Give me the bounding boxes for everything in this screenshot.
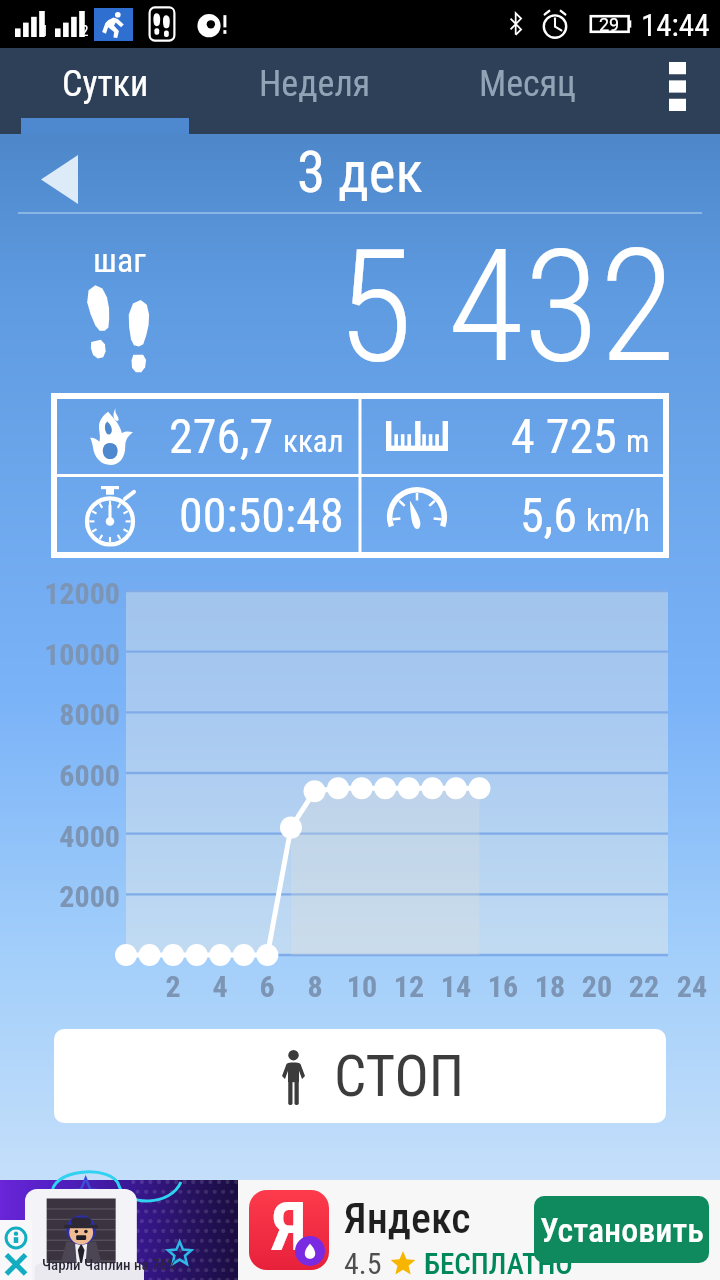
staticText: СТОП	[334, 1043, 465, 1110]
staticText: 24	[662, 969, 720, 1004]
staticText: БЕСПЛАТНО	[424, 1247, 573, 1280]
staticText: 8000	[0, 697, 120, 732]
staticText: Сутки	[62, 63, 149, 105]
button[interactable]: Неделя	[210, 48, 420, 134]
staticText: 10000	[0, 637, 120, 672]
staticText: 18	[520, 969, 580, 1004]
staticText: 2000	[0, 879, 120, 914]
button[interactable]: Ad info and close	[0, 1220, 32, 1280]
button[interactable]: Сутки	[0, 48, 210, 134]
staticText: 3 дек	[297, 139, 423, 206]
staticText: 5 432	[337, 215, 676, 385]
staticText: m	[626, 423, 650, 459]
staticText: 00:50:48	[179, 487, 344, 543]
button[interactable]: Месяц	[420, 48, 634, 134]
staticText: km/h	[586, 502, 650, 538]
staticText: 2	[143, 969, 203, 1004]
staticText: 20	[567, 969, 627, 1004]
staticText: Я	[272, 1190, 307, 1266]
staticText: 22	[614, 969, 674, 1004]
button[interactable]: Установить	[534, 1196, 709, 1263]
button[interactable]: Advertisement	[0, 1180, 238, 1280]
button[interactable]: 276,7	[78, 396, 344, 475]
staticText: Установить	[540, 1210, 704, 1250]
staticText: 12000	[0, 576, 120, 611]
staticText: 12	[379, 969, 439, 1004]
button[interactable]: 5,6	[384, 475, 650, 555]
other: Bluetooth	[508, 9, 524, 39]
staticText: 5,6	[520, 487, 577, 543]
staticText: 16	[473, 969, 533, 1004]
button[interactable]: 4 725	[384, 396, 650, 475]
staticText: 4.5	[344, 1246, 382, 1280]
button[interactable]: Previous day	[32, 152, 86, 206]
staticText: 4 725	[511, 408, 617, 464]
staticText: 4000	[0, 819, 120, 854]
staticText: 2	[81, 22, 89, 40]
staticText: 276,7	[169, 408, 274, 464]
staticText: 29	[599, 14, 620, 35]
staticText: Неделя	[259, 63, 371, 105]
staticText: 6000	[0, 758, 120, 793]
button[interactable]: СТОП	[54, 1029, 666, 1123]
staticText: Месяц	[479, 63, 576, 105]
button[interactable]: 00:50:48	[78, 475, 344, 555]
button[interactable]: More options	[634, 48, 720, 134]
staticText: 10	[332, 969, 392, 1004]
staticText: 6	[237, 969, 297, 1004]
staticText: 1	[41, 22, 49, 40]
button[interactable]: Я	[249, 1190, 329, 1270]
staticText: Чарли Чаплин на 76%	[42, 1256, 177, 1274]
staticText: шаг	[93, 240, 146, 280]
staticText: 4	[190, 969, 250, 1004]
staticText: 8	[285, 969, 345, 1004]
staticText: Яндекс	[344, 1194, 471, 1243]
other: Alarm	[539, 8, 571, 40]
staticText: 14:44	[641, 7, 710, 43]
staticText: 14	[426, 969, 486, 1004]
staticText: ккал	[283, 423, 344, 459]
